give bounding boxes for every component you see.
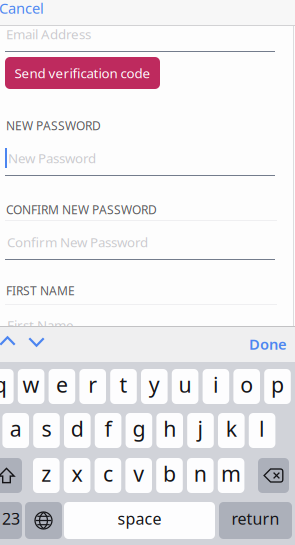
button[interactable]: return [219,502,292,539]
button[interactable]: q [0,369,14,404]
staticText: m [221,459,241,488]
button[interactable]: Send verification code [5,57,160,89]
button[interactable]: Done [249,336,289,352]
staticText: r [88,370,97,399]
button[interactable]: g [126,413,152,448]
staticText: Send verification code [14,64,150,82]
button[interactable]: k [218,413,245,448]
button[interactable]: u [172,369,198,404]
button[interactable]: f [95,413,121,448]
button[interactable]: Next keyboard [25,502,62,539]
staticText: p [271,370,284,399]
staticText: v [133,459,144,488]
staticText: b [163,459,176,488]
button[interactable]: z [33,458,60,493]
staticText: i [213,370,219,399]
staticText: NEW PASSWORD [6,117,101,133]
staticText: c [103,459,113,488]
staticText: f [105,414,112,443]
staticText: e [56,370,68,399]
button[interactable]: n [187,458,214,493]
button[interactable]: m [218,458,244,493]
button[interactable]: space [64,502,215,539]
staticText: s [41,414,51,443]
staticText: k [226,414,237,443]
button[interactable]: b [156,458,183,493]
staticText: u [179,370,192,399]
staticText: q [0,370,7,399]
button[interactable]: e [49,369,75,404]
button[interactable]: x [64,458,90,493]
staticText: d [71,414,84,443]
staticText: g [132,414,145,443]
button[interactable]: j [187,413,214,448]
button[interactable]: h [156,413,183,448]
staticText: w [23,370,40,399]
staticText: y [149,370,160,399]
staticText: Confirm New Password [7,233,148,251]
button[interactable]: s [33,413,60,448]
staticText: l [259,414,265,443]
staticText: Email Address [6,25,91,43]
button[interactable]: c [95,458,121,493]
button[interactable]: 123 [0,502,22,539]
staticText: Cancel [0,0,44,18]
staticText: x [72,459,83,488]
staticText: 123 [0,508,20,529]
button[interactable]: i [203,369,229,404]
button[interactable]: y [141,369,168,404]
staticText: New Password [8,149,96,167]
button[interactable]: Delete [258,458,289,493]
button[interactable]: Shift [0,458,22,493]
staticText: space [117,508,161,529]
staticText: return [231,508,279,529]
button[interactable]: Previous field [0,336,16,346]
button[interactable]: w [18,369,44,404]
button[interactable]: Next field [28,337,45,347]
button[interactable]: r [79,369,106,404]
staticText: j [197,414,203,443]
button[interactable]: p [264,369,291,404]
button[interactable]: a [2,413,29,448]
staticText: n [194,459,207,488]
button[interactable]: Cancel [0,0,59,18]
staticText: Done [249,334,287,354]
staticText: t [119,370,127,399]
button[interactable]: d [64,413,91,448]
button[interactable]: v [125,458,152,493]
staticText: First Name [7,316,74,334]
staticText: h [163,414,176,443]
staticText: a [10,414,22,443]
staticText: FIRST NAME [6,282,75,298]
button[interactable]: l [249,413,275,448]
staticText: CONFIRM NEW PASSWORD [6,201,157,217]
staticText: z [41,459,51,488]
button[interactable]: t [110,369,137,404]
staticText: o [240,370,253,399]
button[interactable]: o [233,369,260,404]
